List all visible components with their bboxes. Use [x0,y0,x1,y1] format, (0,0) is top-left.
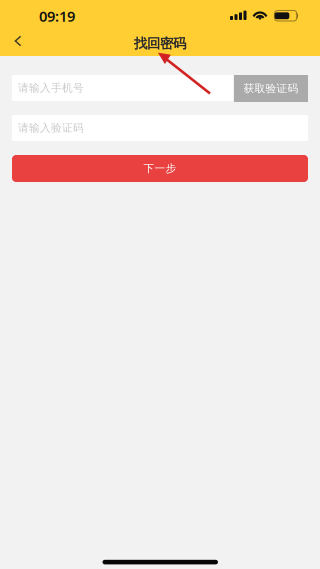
button[interactable]: 获取验证码 [234,75,308,102]
staticText: 请输入验证码 [18,121,84,134]
staticText: 下一步 [143,162,176,175]
button[interactable]: Back [1,27,35,55]
staticText: 获取验证码 [243,82,298,95]
button[interactable]: 下一步 [12,155,308,182]
staticText: 请输入手机号 [18,81,84,94]
staticText: 09:19 [39,6,75,26]
staticText: 找回密码 [134,35,186,52]
